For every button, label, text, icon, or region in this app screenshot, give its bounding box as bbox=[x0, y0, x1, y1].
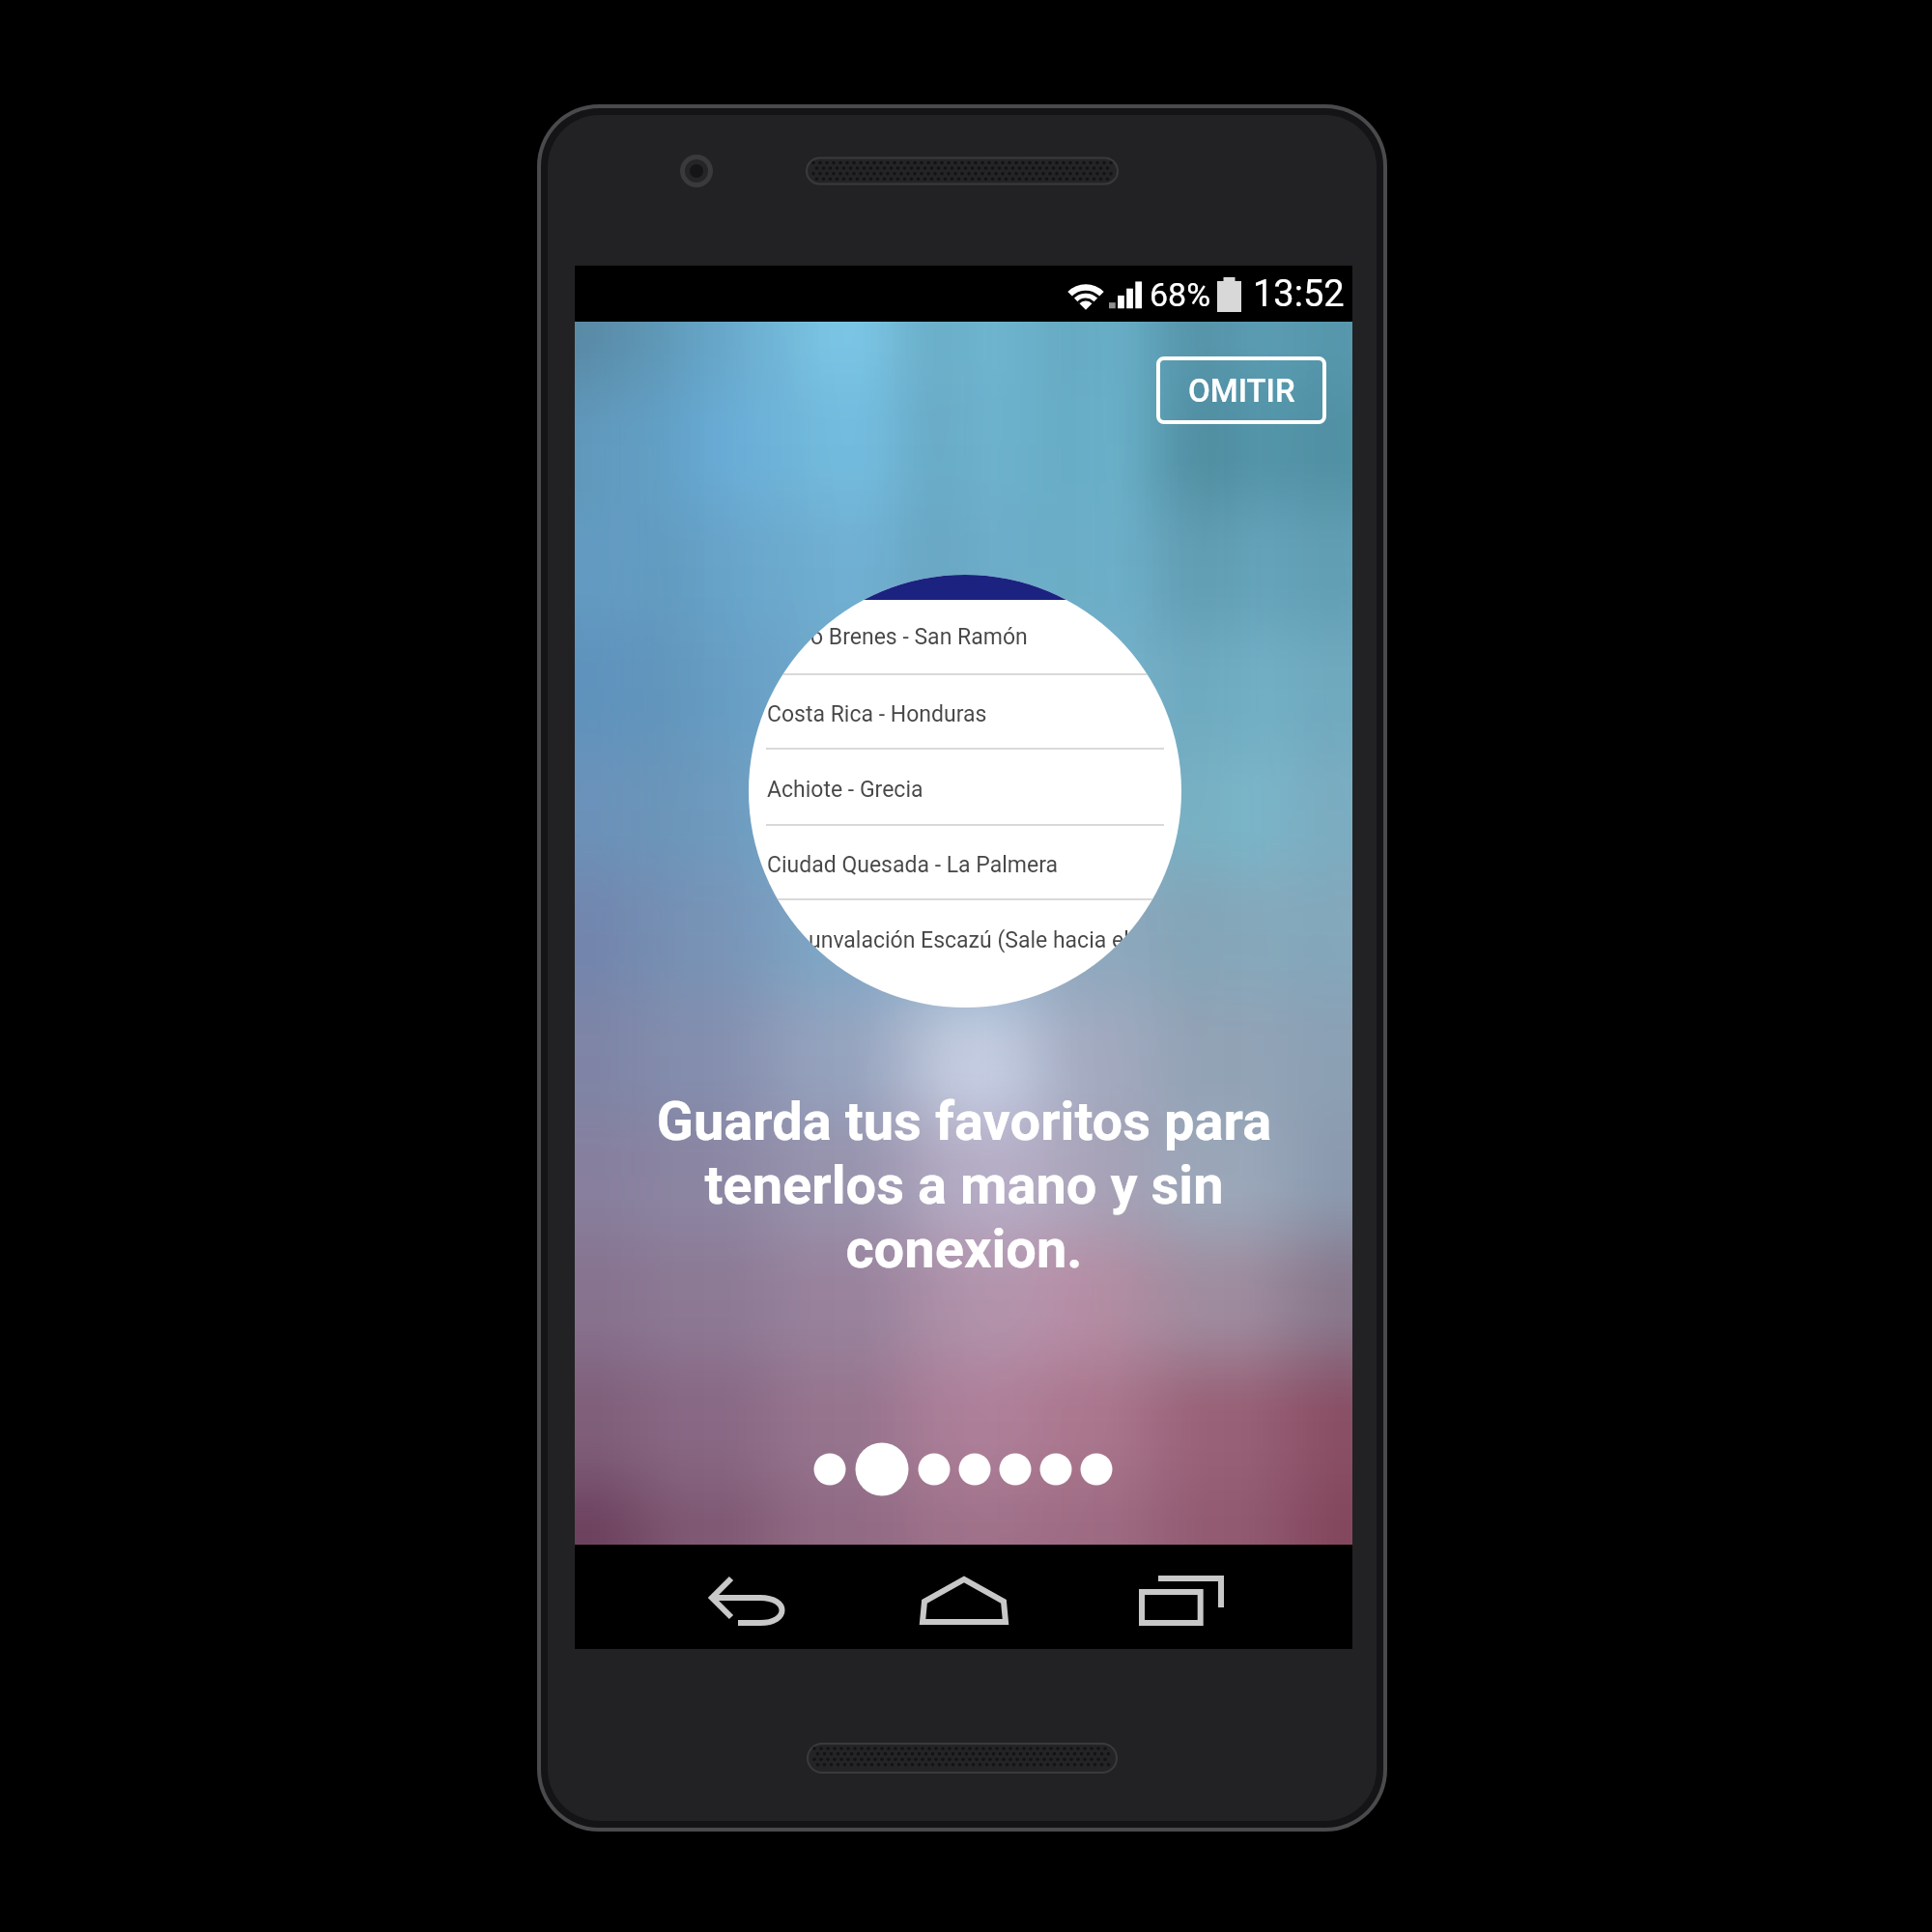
staticText: Guarda tus favoritos para tenerlos a man… bbox=[626, 1090, 1302, 1281]
staticText: OMITIR bbox=[1188, 372, 1295, 410]
button[interactable]: Ciudad Quesada - La Palmera bbox=[767, 848, 1059, 881]
staticText: Costa Rica - Honduras bbox=[767, 701, 987, 727]
staticText: unvalación Escazú (Sale hacia el bbox=[809, 927, 1129, 953]
button[interactable]: Achiote - Grecia bbox=[767, 773, 923, 806]
staticText: 68% bbox=[1150, 275, 1211, 314]
button[interactable]: OMITIR bbox=[1156, 356, 1326, 424]
button[interactable]: unvalación Escazú (Sale hacia el bbox=[809, 923, 1129, 956]
staticText: 13:52 bbox=[1253, 272, 1345, 316]
button[interactable]: Home bbox=[916, 1552, 1012, 1649]
staticText: o Brenes - San Ramón bbox=[810, 624, 1028, 650]
button[interactable]: Back bbox=[701, 1552, 798, 1649]
staticText: Achiote - Grecia bbox=[767, 777, 923, 803]
staticText: Ciudad Quesada - La Palmera bbox=[767, 852, 1059, 878]
button[interactable]: Recent apps bbox=[1133, 1552, 1230, 1649]
button[interactable]: Costa Rica - Honduras bbox=[767, 697, 987, 730]
button[interactable]: o Brenes - San Ramón bbox=[810, 620, 1028, 653]
